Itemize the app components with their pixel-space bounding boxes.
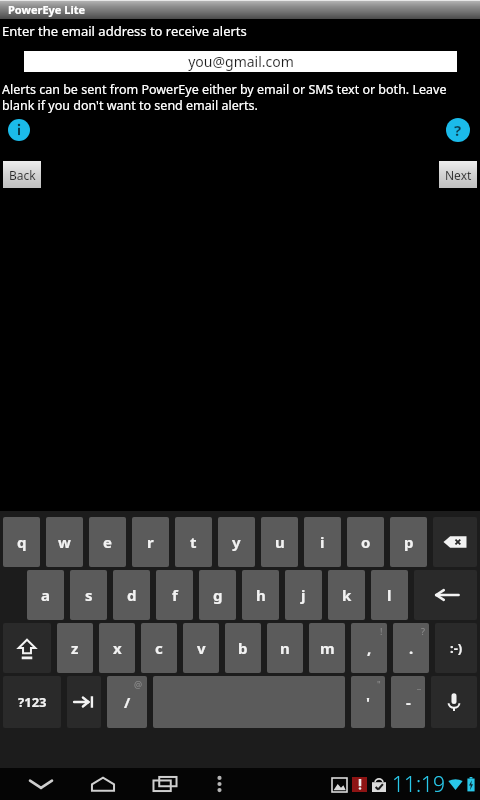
staticText: Next <box>445 167 472 183</box>
staticText: @ <box>134 678 143 690</box>
staticText: s <box>85 585 93 605</box>
staticText: _ <box>417 678 421 690</box>
staticText: Enter the email address to receive alert… <box>2 22 247 40</box>
button[interactable]: More options <box>202 769 236 799</box>
staticText: l <box>387 585 392 605</box>
staticText: o <box>361 532 371 552</box>
button[interactable]: j <box>285 570 322 620</box>
button[interactable]: Recent apps <box>142 769 188 799</box>
staticText: w <box>58 532 71 552</box>
button[interactable]: r <box>132 517 169 567</box>
button[interactable]: Home <box>80 769 126 799</box>
staticText: ?123 <box>18 693 47 711</box>
button[interactable]: Backspace <box>433 517 477 567</box>
staticText: f <box>172 585 178 605</box>
staticText: u <box>275 532 285 552</box>
button[interactable]: e <box>89 517 126 567</box>
button[interactable]: v <box>183 623 219 673</box>
button[interactable]: t <box>175 517 212 567</box>
button[interactable]: Back <box>3 161 41 188</box>
staticText: t <box>190 532 197 552</box>
button[interactable]: b <box>225 623 261 673</box>
staticText: 11:19 <box>392 770 446 799</box>
staticText: q <box>17 532 27 552</box>
button[interactable]: a <box>27 570 64 620</box>
staticText: y <box>232 532 241 552</box>
button[interactable]: Emoticon <box>435 623 477 673</box>
button[interactable]: Voice input <box>431 676 477 728</box>
staticText: a <box>41 585 50 605</box>
button[interactable]: Help <box>446 118 470 142</box>
button[interactable]: h <box>242 570 279 620</box>
staticText: m <box>320 638 335 658</box>
button[interactable]: k <box>328 570 365 620</box>
button[interactable]: _ <box>391 676 425 728</box>
button[interactable]: Hide keyboard <box>18 769 64 799</box>
button[interactable]: @ <box>107 676 147 728</box>
staticText: " <box>377 678 381 690</box>
staticText: r <box>147 532 154 552</box>
staticText: , <box>367 638 372 658</box>
button[interactable]: q <box>3 517 40 567</box>
staticText: c <box>155 638 163 658</box>
staticText: e <box>103 532 112 552</box>
button[interactable]: Shift <box>3 623 51 673</box>
button[interactable]: y <box>218 517 255 567</box>
staticText: you@gmail.com <box>188 52 294 71</box>
button[interactable]: you@gmail.com <box>24 51 457 72</box>
staticText: i <box>320 532 325 552</box>
button[interactable]: w <box>46 517 83 567</box>
button[interactable]: i <box>304 517 341 567</box>
staticText: n <box>280 638 290 658</box>
staticText: ! <box>380 625 383 637</box>
staticText: ? <box>454 120 462 140</box>
staticText: h <box>256 585 266 605</box>
staticText: Alerts can be sent from PowerEye either … <box>2 81 474 113</box>
button[interactable]: ? <box>393 623 429 673</box>
button[interactable]: o <box>347 517 384 567</box>
button[interactable]: m <box>309 623 345 673</box>
button[interactable]: u <box>261 517 298 567</box>
button[interactable]: Enter <box>414 570 477 620</box>
button[interactable]: n <box>267 623 303 673</box>
staticText: / <box>124 692 131 712</box>
button[interactable]: g <box>199 570 236 620</box>
staticText: - <box>406 692 411 712</box>
staticText: k <box>342 585 352 605</box>
staticText: z <box>71 638 79 658</box>
staticText: v <box>197 638 206 658</box>
staticText: j <box>301 585 306 605</box>
staticText: d <box>127 585 137 605</box>
button[interactable]: Information <box>8 119 30 141</box>
button[interactable]: z <box>57 623 93 673</box>
staticText: x <box>113 638 122 658</box>
staticText: :-) <box>450 639 463 657</box>
staticText: PowerEye Lite <box>8 2 86 17</box>
staticText: Back <box>9 167 36 183</box>
button[interactable]: d <box>113 570 150 620</box>
staticText: p <box>404 532 414 552</box>
staticText: . <box>409 638 414 658</box>
button[interactable]: f <box>156 570 193 620</box>
staticText: ' <box>366 692 370 712</box>
button[interactable]: ! <box>351 623 387 673</box>
staticText: b <box>238 638 248 658</box>
button[interactable]: x <box>99 623 135 673</box>
button[interactable]: c <box>141 623 177 673</box>
button[interactable]: Next <box>439 161 477 188</box>
button[interactable]: l <box>371 570 408 620</box>
button[interactable]: " <box>351 676 385 728</box>
button[interactable]: p <box>390 517 427 567</box>
button[interactable]: Symbols <box>3 676 61 728</box>
staticText: ? <box>421 625 425 637</box>
staticText: g <box>213 585 223 605</box>
button[interactable]: s <box>70 570 107 620</box>
button[interactable]: Tab <box>67 676 101 728</box>
